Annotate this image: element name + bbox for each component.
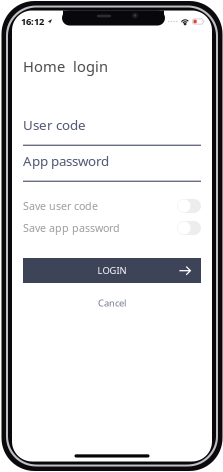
staticText: Save user code bbox=[23, 199, 98, 213]
staticText: Save app password bbox=[23, 221, 120, 235]
staticText: Cancel bbox=[98, 297, 126, 309]
staticText: App password bbox=[23, 152, 109, 170]
staticText: User code bbox=[23, 116, 86, 134]
staticText: LOGIN bbox=[97, 264, 126, 277]
button[interactable]: LOGIN bbox=[23, 258, 201, 283]
staticText: 16:12 bbox=[21, 15, 44, 28]
button[interactable]: Save app password bbox=[23, 220, 201, 236]
staticText: Home login bbox=[23, 56, 108, 76]
button[interactable]: Cancel bbox=[23, 297, 201, 309]
button[interactable]: Save user code bbox=[23, 198, 201, 214]
